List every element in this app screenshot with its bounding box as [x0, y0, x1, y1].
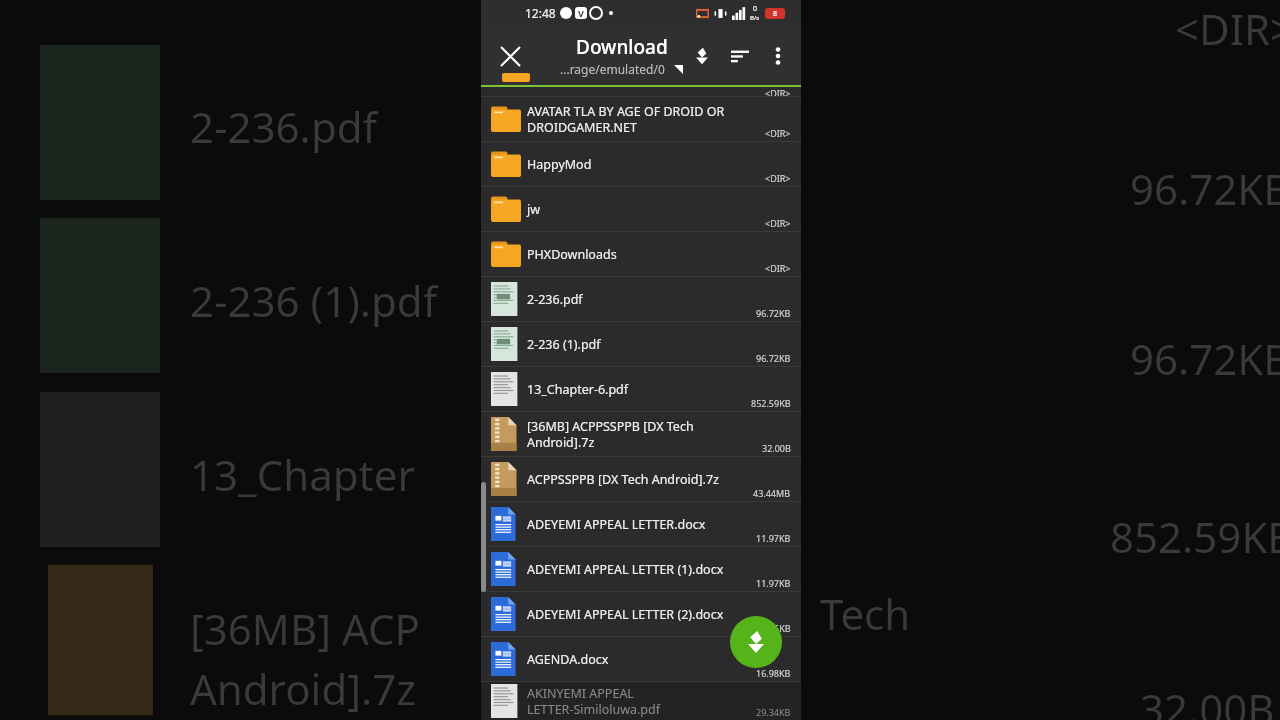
staticText: [36MB] ACP: [190, 600, 420, 657]
button[interactable]: Downloads: [683, 37, 721, 75]
staticText: ADEYEMI APPEAL LETTER.docx: [527, 516, 706, 533]
button[interactable]: [36MB] ACPPSSPPB [DX Tech Android].7z: [481, 412, 801, 456]
staticText: 12:48: [525, 5, 556, 21]
staticText: 2-236 (1).pdf: [527, 336, 601, 353]
button[interactable]: 2-236 (1).pdf: [481, 322, 801, 366]
staticText: AGENDA.docx: [527, 651, 609, 668]
staticText: 29.34KB: [756, 706, 791, 718]
staticText: [36MB] ACPPSSPPB [DX Tech Android].7z: [527, 418, 694, 450]
staticText: 16.98KB: [756, 667, 791, 679]
staticText: V: [578, 7, 584, 19]
staticText: HappyMod: [527, 156, 592, 173]
staticText: 2-236.pdf: [190, 98, 377, 155]
button[interactable]: PHXDownloads: [481, 232, 801, 276]
staticText: <DIR>: [765, 262, 791, 274]
button[interactable]: Sort: [721, 37, 759, 75]
staticText: ACPPSSPPB [DX Tech Android].7z: [527, 471, 719, 488]
staticText: 96.72KB: [1130, 160, 1280, 217]
button[interactable]: AVATAR TLA BY AGE OF DROID OR DROIDGAMER…: [481, 97, 801, 141]
staticText: <DIR>: [1175, 0, 1280, 57]
staticText: 852.59KB: [1110, 508, 1280, 565]
button[interactable]: HappyMod: [481, 142, 801, 186]
staticText: Download: [576, 34, 668, 60]
staticText: 11.97KB: [756, 532, 791, 544]
staticText: ...rage/emulated/0: [560, 61, 665, 77]
staticText: 8: [773, 9, 778, 19]
staticText: B/s: [750, 14, 760, 22]
staticText: PHXDownloads: [527, 246, 617, 263]
staticText: <DIR>: [765, 87, 791, 96]
button[interactable]: 2-236.pdf: [481, 277, 801, 321]
staticText: 43.44MB: [753, 487, 791, 499]
button[interactable]: ADEYEMI APPEAL LETTER (1).docx: [481, 547, 801, 591]
button[interactable]: More options: [759, 37, 797, 75]
staticText: 96.72KB: [756, 352, 791, 364]
staticText: 96.72KB: [756, 307, 791, 319]
staticText: AKINYEMI APPEAL LETTER-Similoluwa.pdf: [527, 685, 661, 717]
staticText: 11.97KB: [756, 577, 791, 589]
staticText: 96.72KB: [1130, 330, 1280, 387]
staticText: <DIR>: [765, 217, 791, 229]
staticText: 2-236 (1).pdf: [190, 272, 438, 329]
staticText: 32.00B: [1140, 680, 1275, 720]
button[interactable]: ACPPSSPPB [DX Tech Android].7z: [481, 457, 801, 501]
staticText: 2-236.pdf: [527, 291, 583, 308]
staticText: <DIR>: [765, 127, 791, 139]
staticText: ADEYEMI APPEAL LETTER (2).docx: [527, 606, 724, 623]
staticText: AVATAR TLA BY AGE OF DROID OR DROIDGAMER…: [527, 103, 725, 135]
staticText: 13_Chapter-6.pdf: [527, 381, 629, 398]
button[interactable]: AGENDA.docx: [481, 637, 801, 681]
staticText: 32.00B: [762, 442, 791, 454]
staticText: 13_Chapter: [190, 446, 415, 503]
button[interactable]: Download: [730, 616, 782, 668]
button[interactable]: AKINYEMI APPEAL LETTER-Similoluwa.pdf: [481, 682, 801, 720]
staticText: 852.59KB: [751, 397, 791, 409]
button[interactable]: jw: [481, 187, 801, 231]
staticText: ADEYEMI APPEAL LETTER (1).docx: [527, 561, 724, 578]
button[interactable]: ADEYEMI APPEAL LETTER (2).docx: [481, 592, 801, 636]
button[interactable]: Close: [489, 35, 531, 77]
staticText: jw: [527, 201, 541, 218]
staticText: Android].7z: [190, 660, 417, 717]
button[interactable]: ADEYEMI APPEAL LETTER.docx: [481, 502, 801, 546]
staticText: 5KB: [774, 622, 791, 634]
staticText: Tech: [820, 585, 911, 642]
staticText: 0: [753, 4, 758, 14]
button[interactable]: 13_Chapter-6.pdf: [481, 367, 801, 411]
staticText: <DIR>: [765, 172, 791, 184]
